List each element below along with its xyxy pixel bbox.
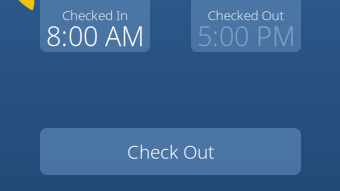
- button[interactable]: Check Out: [40, 128, 301, 175]
- staticText: Check Out: [127, 139, 214, 164]
- staticText: Checked Out: [207, 6, 284, 24]
- staticText: Checked In: [62, 6, 128, 24]
- staticText: 8:00 AM: [46, 18, 144, 54]
- staticText: 5:00 PM: [197, 18, 295, 54]
